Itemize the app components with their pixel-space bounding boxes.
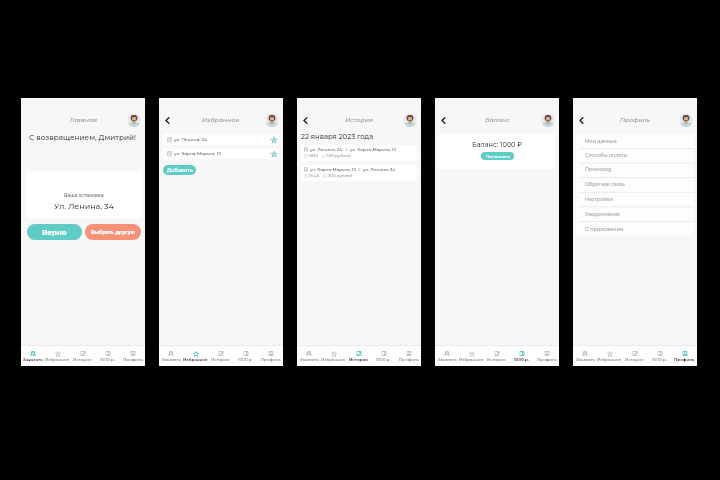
button[interactable]: История (622, 346, 647, 366)
staticText: 18:10 (309, 153, 319, 158)
staticText: Профиль (399, 357, 419, 362)
button[interactable]: Избранное (459, 346, 484, 366)
staticText: Настройки (585, 196, 613, 202)
staticText: История (487, 357, 506, 362)
button[interactable]: Избранное (45, 346, 70, 366)
button[interactable]: Избранное (597, 346, 622, 366)
button[interactable]: Профиль (258, 346, 283, 366)
button[interactable]: Favourite (270, 150, 278, 158)
staticText: Ваша остановка: (64, 193, 105, 199)
staticText: История (211, 357, 230, 362)
staticText: ул. Ленина, 34 (310, 147, 343, 152)
button[interactable]: 1000 р. (371, 346, 396, 366)
button[interactable]: Заказать (159, 346, 183, 366)
staticText: Заказать (23, 357, 43, 362)
button[interactable]: 1000 р. (509, 346, 534, 366)
staticText: Избранное (202, 116, 240, 124)
staticText: Избранное (597, 357, 622, 362)
button[interactable]: Заказать (435, 346, 459, 366)
staticText: Избранное (45, 357, 70, 362)
button[interactable]: История (346, 346, 371, 366)
staticText: Пополнить (486, 154, 510, 159)
button[interactable]: ул. Ленина, 34 (301, 145, 417, 161)
button[interactable]: Profile (679, 113, 693, 127)
staticText: 1000 р. (376, 357, 391, 362)
button[interactable]: Заказать (21, 346, 45, 366)
button[interactable]: Настройки (575, 191, 694, 206)
staticText: Профиль (620, 116, 651, 124)
button[interactable]: 1000 р. (647, 346, 672, 366)
button[interactable]: Профиль (534, 346, 559, 366)
staticText: Профиль (674, 357, 695, 362)
button[interactable]: Мои данные (575, 134, 694, 148)
button[interactable]: Заказать (297, 346, 321, 366)
staticText: ул. Ленина, 34 (363, 167, 396, 172)
staticText: Промокод (585, 166, 612, 172)
button[interactable]: Профиль (396, 346, 421, 366)
button[interactable]: История (70, 346, 95, 366)
button[interactable]: Пополнить (481, 152, 514, 160)
staticText: Заказать (576, 357, 595, 362)
staticText: Добавить (167, 167, 193, 173)
button[interactable]: Добавить (163, 165, 196, 175)
button[interactable]: ул. Ленина, 34 (163, 134, 279, 145)
staticText: ул. Карла-Маркса, 13 (310, 167, 356, 172)
button[interactable]: 1000 р. (233, 346, 258, 366)
button[interactable]: Профиль (120, 346, 145, 366)
button[interactable]: ул. Карла-Маркса, 13 (301, 165, 417, 181)
staticText: Мои данные (585, 138, 617, 144)
button[interactable]: Профиль (672, 346, 697, 366)
button[interactable]: Back (575, 114, 587, 126)
button[interactable]: История (208, 346, 233, 366)
button[interactable]: Избранное (183, 346, 208, 366)
button[interactable]: Верно (27, 224, 82, 240)
staticText: О приложении (585, 226, 624, 232)
staticText: Заказать (162, 357, 181, 362)
staticText: Заказать (300, 357, 319, 362)
staticText: Выбрать другую (91, 229, 136, 235)
staticText: Баланс: 1000 ₽ (472, 141, 523, 149)
staticText: 1000 р. (100, 357, 115, 362)
staticText: Уведомления (585, 211, 620, 217)
staticText: 1000 р. (514, 357, 529, 362)
button[interactable]: Back (299, 114, 311, 126)
staticText: История (625, 357, 644, 362)
staticText: Заказать (438, 357, 457, 362)
staticText: История (73, 357, 92, 362)
button[interactable]: Profile (403, 113, 417, 127)
button[interactable]: Back (437, 114, 449, 126)
button[interactable]: Избранное (321, 346, 346, 366)
staticText: Избранное (459, 357, 484, 362)
button[interactable]: Profile (127, 113, 141, 127)
staticText: Обратная связь (585, 181, 626, 187)
staticText: ул. Ленина, 34 (174, 137, 207, 142)
button[interactable]: Обратная связь (575, 176, 694, 191)
staticText: ул. Карла-Маркса, 13 (350, 147, 396, 152)
staticText: Избранное (183, 357, 208, 362)
button[interactable]: Back (161, 114, 173, 126)
button[interactable]: Favourite (270, 136, 278, 144)
staticText: Избранное (321, 357, 346, 362)
button[interactable]: О приложении (575, 221, 694, 236)
staticText: 1000 р. (652, 357, 667, 362)
staticText: ул. Карла-Маркса, 13 (174, 151, 221, 156)
staticText: Баланс (485, 116, 510, 124)
button[interactable]: Промокод (575, 162, 694, 176)
staticText: История (349, 357, 368, 362)
staticText: Ул. Ленина, 34 (54, 201, 114, 211)
staticText: Профиль (261, 357, 281, 362)
staticText: С возвращением, Дмитрий! (29, 133, 137, 142)
button[interactable]: Уведомления (575, 206, 694, 221)
button[interactable]: 1000 р. (95, 346, 120, 366)
button[interactable]: Profile (265, 113, 279, 127)
staticText: Верно (42, 228, 67, 237)
button[interactable]: Способы оплаты (575, 148, 694, 162)
staticText: 22 января 2023 года (301, 132, 374, 140)
staticText: 300 рублей (328, 173, 353, 178)
button[interactable]: Заказать (573, 346, 597, 366)
button[interactable]: История (484, 346, 509, 366)
button[interactable]: ул. Карла-Маркса, 13 (163, 148, 279, 159)
staticText: 100 рублей (327, 153, 351, 158)
button[interactable]: Выбрать другую (85, 224, 141, 240)
button[interactable]: Profile (541, 113, 555, 127)
